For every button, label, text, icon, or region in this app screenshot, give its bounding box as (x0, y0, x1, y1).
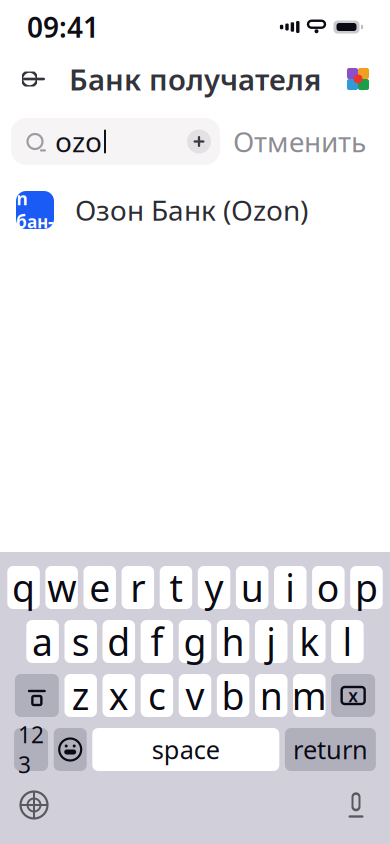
button[interactable]: m (293, 674, 325, 717)
staticText: i (285, 563, 295, 612)
button[interactable]: d (102, 620, 135, 663)
button[interactable]: z (64, 674, 97, 717)
staticText: k (299, 617, 319, 666)
button[interactable]: f (141, 620, 173, 663)
staticText: d (107, 617, 130, 666)
button[interactable]: space (92, 728, 279, 771)
staticText: g (183, 617, 206, 666)
button[interactable]: q (7, 566, 40, 609)
staticText: 09:41 (27, 8, 99, 46)
staticText: Озон Банк (Ozon) (75, 191, 308, 229)
button[interactable]: w (45, 566, 78, 609)
staticText: Банк получателя (69, 59, 321, 98)
staticText: p (355, 563, 378, 612)
staticText: e (89, 563, 110, 612)
staticText: h (222, 617, 245, 666)
button[interactable]: Shift (15, 674, 59, 717)
staticText: o (317, 563, 340, 612)
button[interactable]: Delete (331, 674, 375, 717)
staticText: банк (16, 210, 54, 256)
button[interactable]: k (293, 620, 325, 663)
button[interactable]: Dictate (334, 783, 378, 827)
staticText: return (293, 733, 368, 766)
button[interactable]: u (236, 566, 268, 609)
button[interactable]: return (285, 728, 376, 771)
staticText: l (342, 617, 352, 666)
button[interactable]: 123 (14, 728, 48, 771)
staticText: ozon (16, 164, 53, 210)
button[interactable]: i (274, 566, 306, 609)
button[interactable]: s (64, 620, 97, 663)
staticText: f (150, 617, 163, 666)
staticText: j (266, 617, 276, 666)
staticText: space (152, 733, 220, 766)
button[interactable]: g (179, 620, 211, 663)
button[interactable]: o (312, 566, 345, 609)
staticText: q (12, 563, 35, 612)
staticText: x (109, 671, 129, 720)
staticText: z (72, 671, 90, 720)
staticText: w (47, 563, 76, 612)
button[interactable]: Next keyboard (12, 783, 56, 827)
button[interactable]: j (255, 620, 287, 663)
staticText: c (148, 671, 166, 720)
button[interactable]: l (331, 620, 364, 663)
button[interactable]: y (198, 566, 230, 609)
staticText: x (348, 684, 358, 707)
staticText: ozo (55, 123, 102, 160)
staticText: v (185, 671, 204, 720)
staticText: m (292, 671, 327, 720)
button[interactable]: n (255, 674, 287, 717)
staticText: s (72, 617, 90, 666)
button[interactable]: t (160, 566, 192, 609)
button[interactable]: a (26, 620, 59, 663)
button[interactable]: c (141, 674, 173, 717)
staticText: u (241, 563, 264, 612)
button[interactable]: Share (338, 59, 378, 99)
button[interactable]: Back (12, 57, 56, 101)
button[interactable]: Отменить (220, 118, 379, 165)
staticText: t (169, 563, 182, 612)
button[interactable]: p (350, 566, 383, 609)
button[interactable]: Emoji (54, 728, 87, 771)
button[interactable]: ozon (0, 179, 390, 241)
staticText: b (222, 671, 245, 720)
button[interactable]: r (122, 566, 154, 609)
button[interactable]: h (217, 620, 249, 663)
button[interactable]: b (217, 674, 249, 717)
button[interactable]: x (102, 674, 135, 717)
staticText: y (205, 563, 224, 612)
button[interactable]: v (179, 674, 211, 717)
staticText: n (260, 671, 283, 720)
button[interactable]: e (83, 566, 116, 609)
staticText: r (130, 563, 145, 612)
staticText: a (32, 617, 53, 666)
button[interactable]: Clear text (181, 121, 217, 161)
staticText: Отменить (233, 123, 366, 160)
staticText: 123 (18, 719, 44, 780)
